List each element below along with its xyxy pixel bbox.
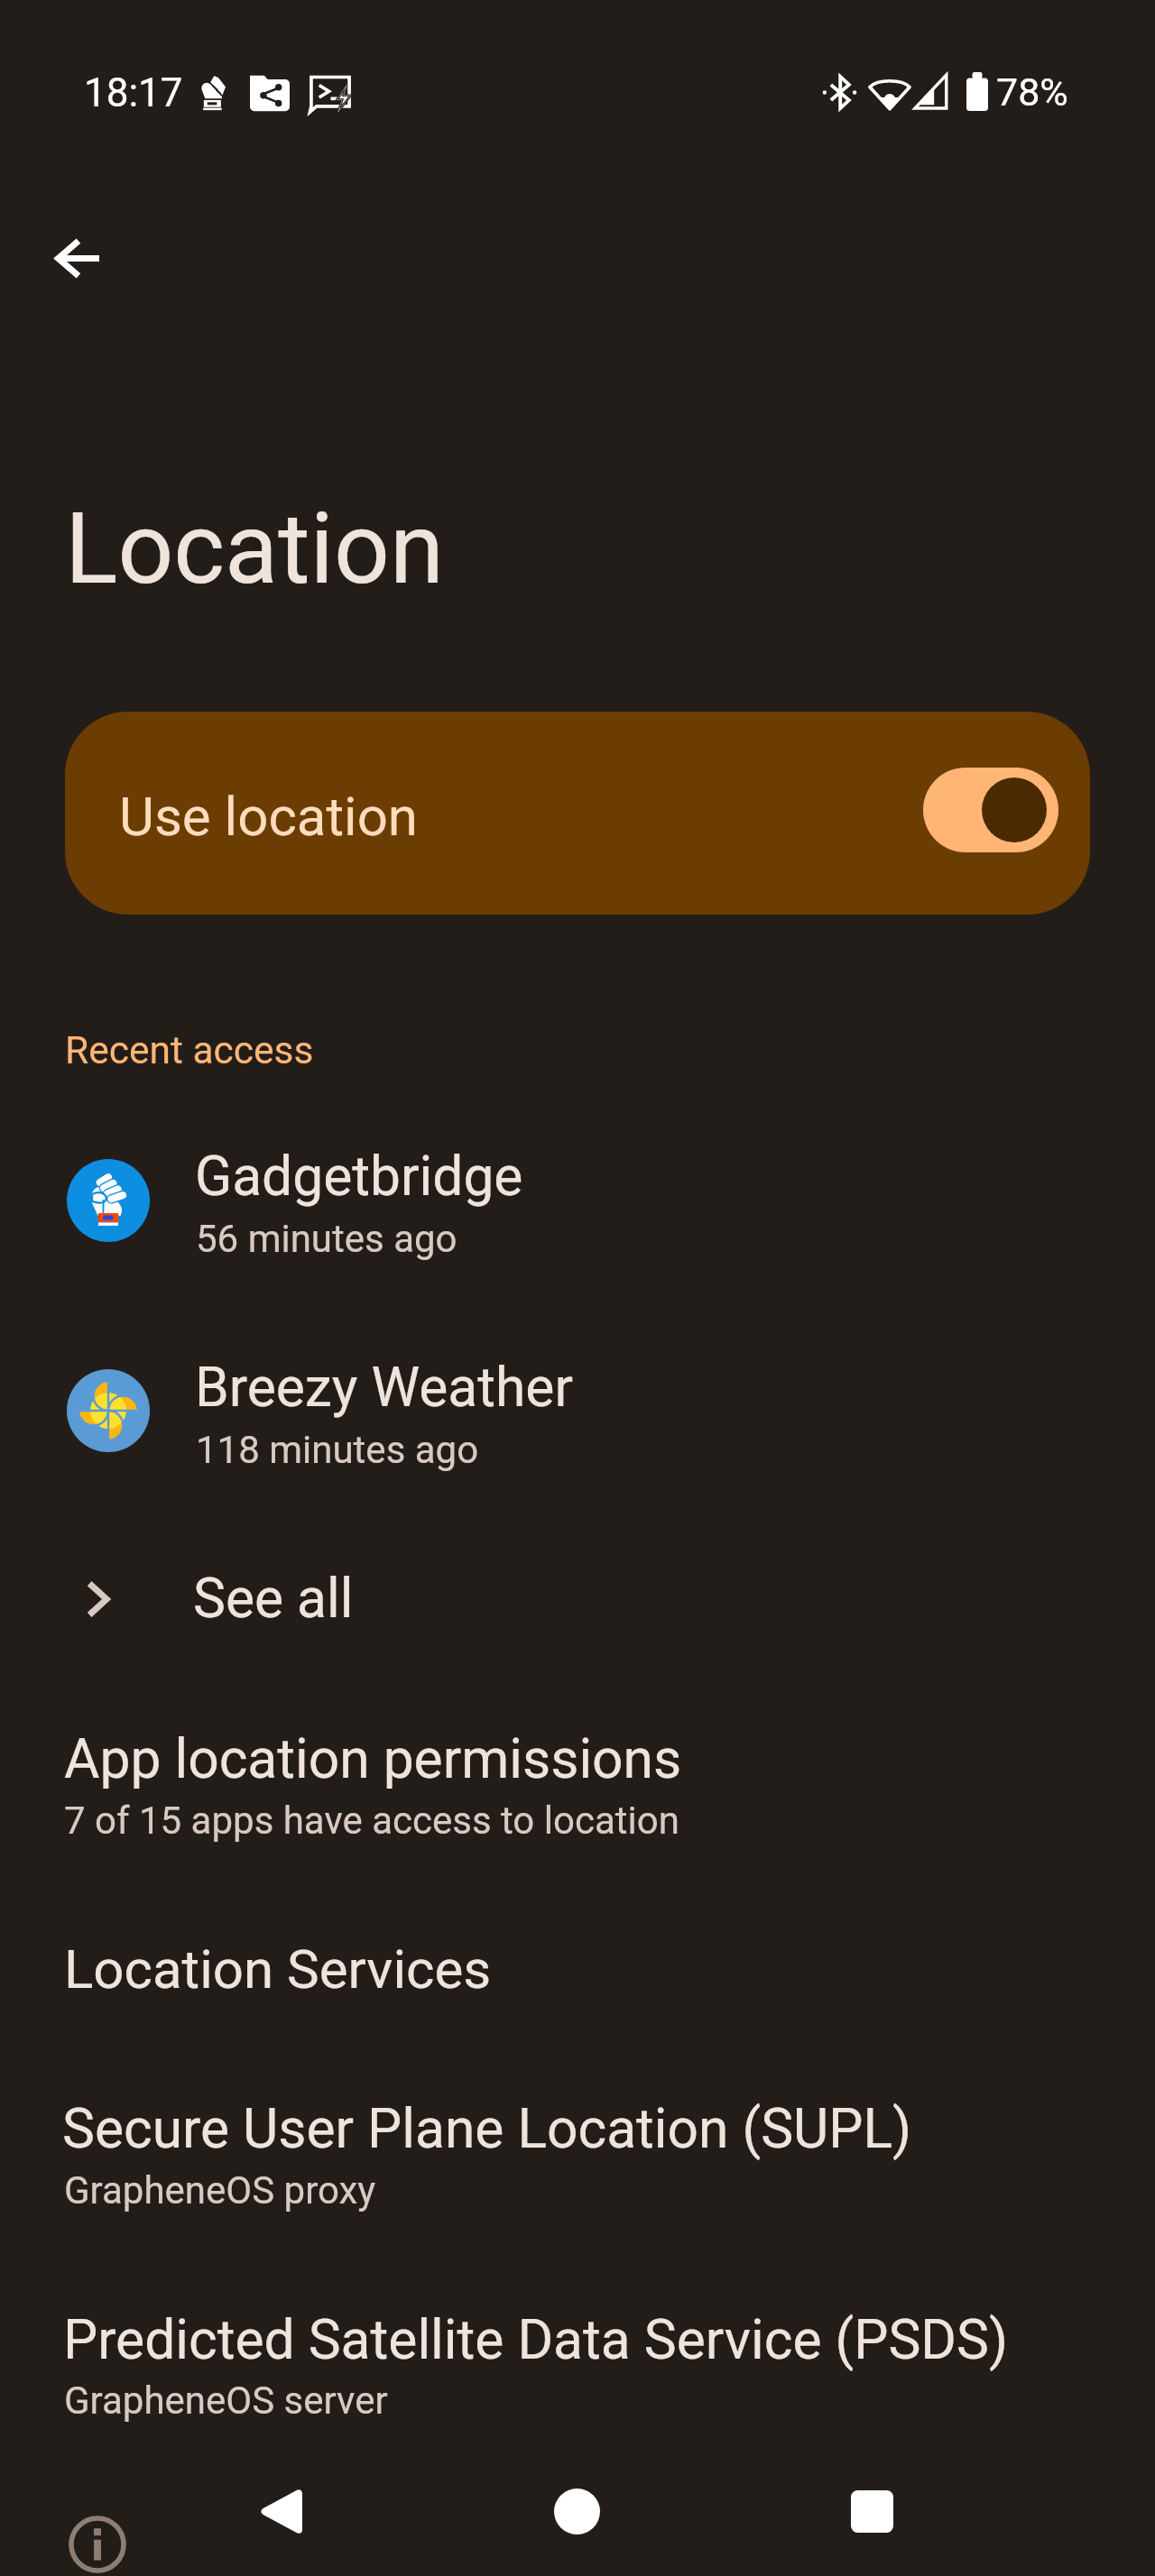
button[interactable]: Breezy Weather [0, 1348, 1155, 1483]
staticText: 118 minutes ago [196, 1428, 479, 1472]
button[interactable]: Predicted Satellite Data Service (PSDS) [0, 2286, 1155, 2449]
staticText: Gadgetbridge [195, 1145, 523, 1209]
staticText: 18:17 [84, 69, 183, 116]
staticText: GrapheneOS proxy [64, 2168, 376, 2213]
button[interactable]: Navigate up [32, 213, 122, 303]
staticText: Recent access [65, 1028, 314, 1073]
button[interactable]: Information [52, 2499, 143, 2576]
staticText: 7 of 15 apps have access to location [64, 1799, 679, 1843]
staticText: See all [193, 1567, 354, 1631]
staticText: GrapheneOS server [64, 2378, 388, 2423]
staticText: Secure User Plane Location (SUPL) [62, 2097, 912, 2161]
staticText: 78% [996, 69, 1068, 115]
staticText: Use location [119, 785, 418, 848]
button[interactable]: Gadgetbridge [0, 1137, 1155, 1273]
staticText: Breezy Weather [195, 1356, 573, 1420]
button[interactable]: Home [531, 2466, 622, 2556]
staticText: App location permissions [64, 1727, 682, 1791]
button[interactable]: Recent apps [827, 2466, 917, 2556]
button[interactable]: Back [236, 2466, 327, 2556]
button[interactable]: Use location [65, 712, 1090, 915]
button[interactable]: App location permissions [0, 1705, 1155, 1863]
staticText: Location [65, 492, 444, 606]
staticText: Location Services [64, 1937, 492, 2001]
staticText: Predicted Satellite Data Service (PSDS) [63, 2308, 1009, 2372]
staticText: 56 minutes ago [196, 1217, 457, 1261]
button[interactable]: Secure User Plane Location (SUPL) [0, 2075, 1155, 2237]
button[interactable]: See all [0, 1539, 1155, 1658]
